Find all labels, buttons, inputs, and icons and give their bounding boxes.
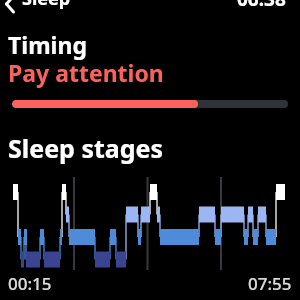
staticText: 06:38 — [237, 0, 286, 12]
staticText: Timing — [8, 29, 87, 60]
staticText: 00:15 — [8, 272, 52, 295]
staticText: Sleep — [22, 0, 71, 11]
button[interactable] — [0, 0, 90, 14]
staticText: Pay attention — [8, 57, 164, 88]
staticText: 07:55 — [248, 272, 292, 295]
staticText: Sleep stages — [8, 131, 164, 165]
